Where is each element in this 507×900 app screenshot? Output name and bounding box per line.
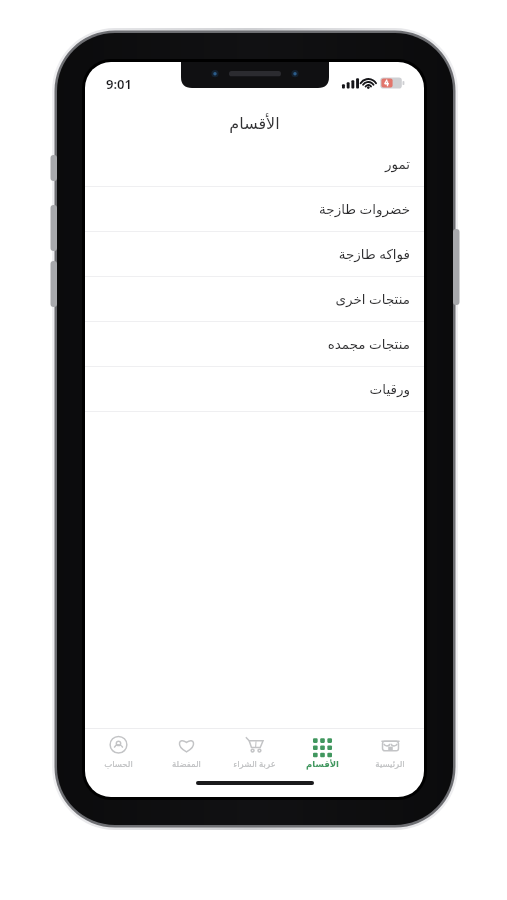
staticText: عربة الشراء	[233, 758, 276, 770]
staticText: منتجات اخرى	[335, 290, 410, 308]
staticText: 9:01	[106, 75, 132, 93]
staticText: الأقسام	[229, 114, 280, 133]
button[interactable]: المفضلة	[152, 729, 220, 775]
button[interactable]: عربة الشراء	[220, 729, 288, 775]
button[interactable]: الأقسام	[288, 729, 356, 775]
button[interactable]: خضروات طازجة	[85, 187, 424, 232]
staticText: المفضلة	[172, 759, 201, 769]
staticText: تمور	[384, 156, 410, 172]
button[interactable]: فواكه طازجة	[85, 232, 424, 277]
staticText: الأقسام	[306, 759, 339, 769]
staticText: فواكه طازجة	[338, 245, 410, 263]
staticText: الرئيسية	[375, 759, 405, 769]
button[interactable]: تمور	[85, 142, 424, 187]
button[interactable]: الحساب	[85, 729, 152, 775]
button[interactable]: منتجات مجمده	[85, 322, 424, 367]
button[interactable]: الرئيسية	[356, 729, 424, 775]
button[interactable]: منتجات اخرى	[85, 277, 424, 322]
staticText: منتجات مجمده	[327, 335, 410, 353]
staticText: الحساب	[104, 759, 133, 769]
staticText: خضروات طازجة	[319, 200, 410, 218]
button[interactable]: ورقيات	[85, 367, 424, 412]
staticText: ورقيات	[369, 381, 410, 397]
